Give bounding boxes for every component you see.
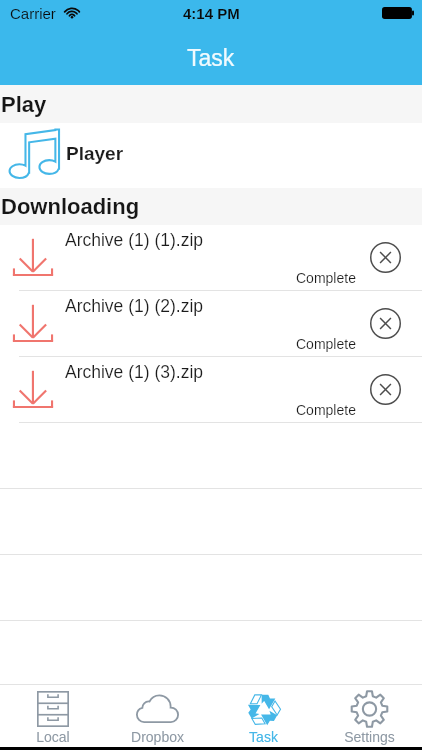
button[interactable]: Archive (1) (3).zip	[0, 357, 422, 423]
button[interactable]: Archive (1) (1).zip	[0, 225, 422, 291]
staticText: Play	[1, 92, 47, 117]
staticText: Local	[36, 729, 70, 745]
staticText: Complete	[296, 270, 356, 286]
button[interactable]: Archive (1) (2).zip	[0, 291, 422, 357]
button[interactable]: Player	[0, 123, 422, 188]
staticText: Archive (1) (1).zip	[65, 230, 204, 250]
staticText: Task	[249, 729, 278, 745]
staticText: Dropbox	[131, 729, 184, 745]
staticText: 4:14 PM	[183, 5, 240, 22]
staticText: Archive (1) (2).zip	[65, 296, 204, 316]
button[interactable]: Cancel download	[362, 234, 408, 280]
button[interactable]: Task	[210, 685, 316, 747]
staticText: Complete	[296, 336, 356, 352]
staticText: Settings	[344, 729, 395, 745]
staticText: Carrier	[10, 5, 56, 22]
staticText: Task	[187, 45, 235, 71]
staticText: Downloading	[1, 194, 140, 219]
button[interactable]: Dropbox	[105, 685, 210, 747]
staticText: Archive (1) (3).zip	[65, 362, 204, 382]
staticText: Complete	[296, 402, 356, 418]
button[interactable]: Settings	[316, 685, 422, 747]
button[interactable]: Local	[0, 685, 105, 747]
button[interactable]: Cancel download	[362, 366, 408, 412]
button[interactable]: Cancel download	[362, 300, 408, 346]
staticText: Player	[66, 143, 124, 164]
